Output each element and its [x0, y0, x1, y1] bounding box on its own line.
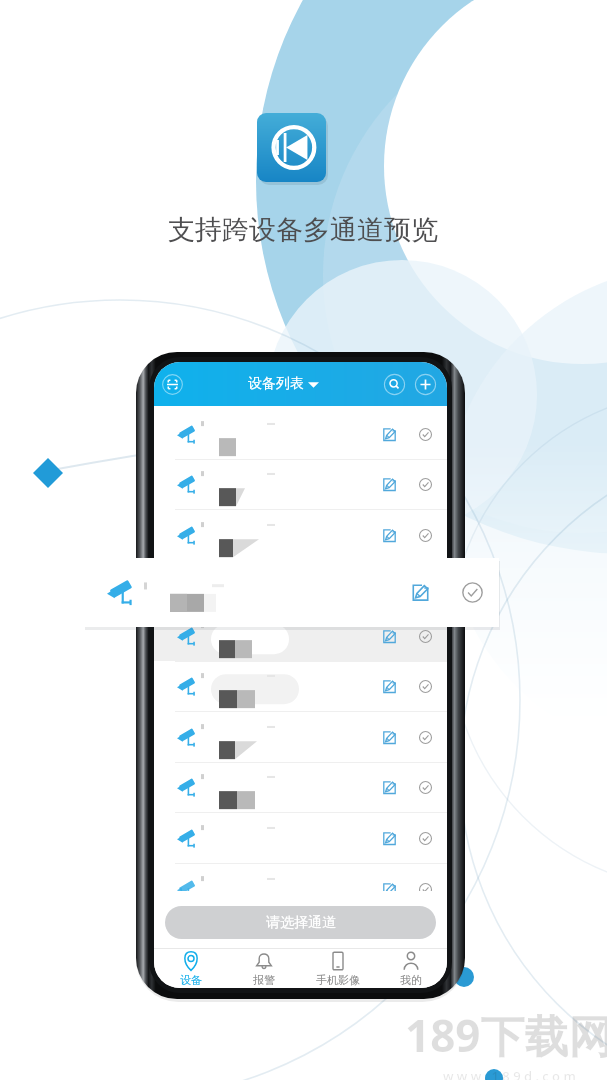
- button[interactable]: 请选择通道: [165, 906, 436, 939]
- button[interactable]: Search: [382, 372, 407, 397]
- button[interactable]: [154, 661, 447, 711]
- button[interactable]: [154, 864, 447, 891]
- button[interactable]: 我的: [374, 949, 447, 988]
- button[interactable]: 设备列表: [248, 375, 319, 393]
- button[interactable]: [154, 813, 447, 863]
- staticText: 设备: [180, 973, 202, 987]
- staticText: 189下载网: [405, 1005, 607, 1065]
- staticText: 请选择通道: [266, 914, 336, 932]
- staticText: 设备列表: [248, 375, 304, 393]
- button[interactable]: [154, 611, 447, 661]
- staticText: 手机影像: [316, 973, 360, 987]
- button[interactable]: 报警: [227, 949, 300, 988]
- button[interactable]: [154, 560, 447, 610]
- staticText: w w w . 1 8 9 d . c o m: [443, 1067, 576, 1080]
- staticText: 报警: [253, 973, 275, 987]
- button[interactable]: [154, 409, 447, 459]
- button[interactable]: [154, 459, 447, 509]
- staticText: 支持跨设备多通道预览: [168, 213, 438, 247]
- button[interactable]: [84, 558, 499, 627]
- button[interactable]: Scan: [160, 372, 185, 397]
- button[interactable]: [154, 762, 447, 812]
- button[interactable]: 设备: [154, 949, 227, 988]
- button[interactable]: Add device: [413, 372, 438, 397]
- staticText: 我的: [400, 973, 422, 987]
- button[interactable]: [154, 712, 447, 762]
- button[interactable]: 手机影像: [301, 949, 374, 988]
- button[interactable]: [154, 510, 447, 560]
